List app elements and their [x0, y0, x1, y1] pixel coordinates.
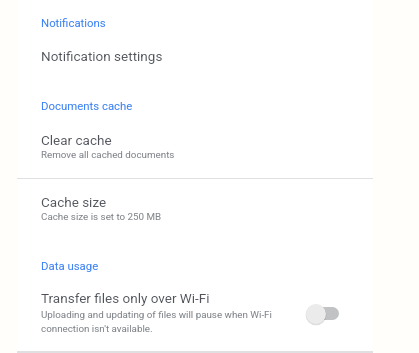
staticText: Uploading and updating of files will pau…: [41, 309, 272, 320]
staticText: Notification settings: [41, 48, 163, 64]
staticText: Cache size: [41, 194, 107, 210]
staticText: Transfer files only over Wi-Fi: [41, 290, 210, 306]
button[interactable]: [17, 34, 373, 74]
staticText: Cache size is set to 250 MB: [41, 211, 162, 222]
staticText: Documents cache: [41, 99, 133, 112]
staticText: connection isn't available.: [41, 323, 153, 334]
staticText: Notifications: [41, 16, 106, 29]
button[interactable]: [17, 283, 373, 345]
staticText: Data usage: [41, 259, 99, 272]
button[interactable]: [17, 124, 373, 168]
staticText: Remove all cached documents: [41, 149, 175, 160]
staticText: Clear cache: [41, 132, 112, 148]
button[interactable]: [17, 188, 373, 232]
button[interactable]: Transfer files only over Wi-Fi, off: [304, 302, 328, 326]
